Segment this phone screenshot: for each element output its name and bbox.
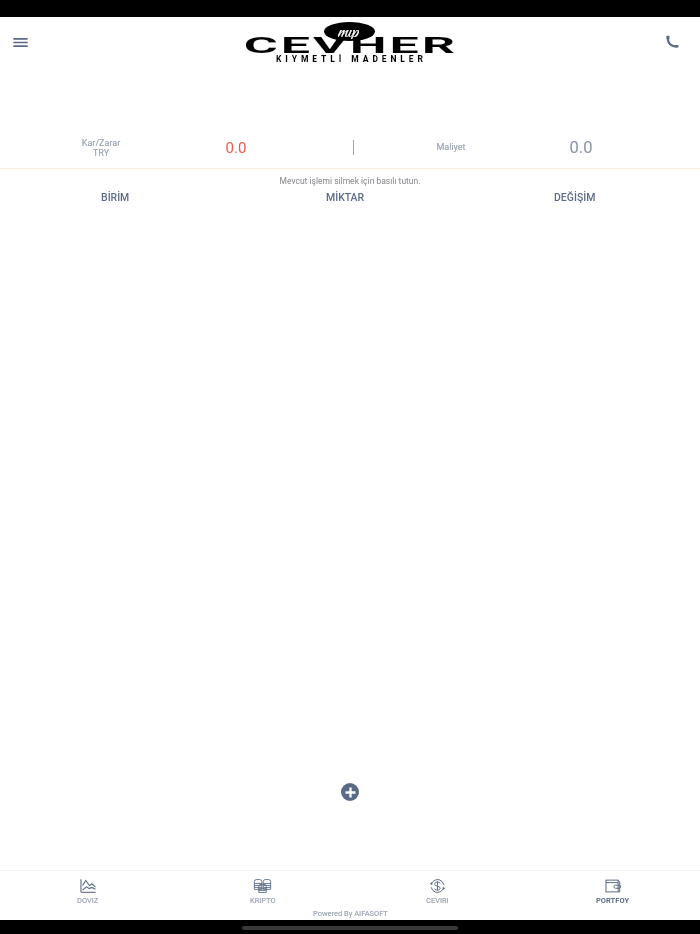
button[interactable]: MİKTAR [230,191,460,203]
staticText: KIYMETLİ MADENLER [276,54,427,64]
button[interactable]: CEVIRI [350,871,525,905]
staticText: BİRİM [101,191,130,203]
staticText: DEĞİŞİM [554,191,596,203]
button[interactable]: BİRİM [0,191,230,203]
staticText: CEVIRI [426,896,449,905]
staticText: PORTFOY [596,896,630,905]
staticText: Powered By AIFASOFT [313,909,388,918]
staticText: 0.0 [541,138,621,157]
staticText: DOVIZ [77,896,99,905]
button[interactable]: PORTFOY [525,871,700,905]
staticText: Kar/Zarar TRY [61,138,141,158]
staticText: Maliyet [411,142,491,153]
staticText: 0.0 [196,139,276,157]
button[interactable]: DEĞİŞİM [460,191,690,203]
button[interactable]: Add [341,783,359,801]
staticText: CEVHER [244,33,459,59]
button[interactable]: Call [654,23,690,59]
staticText: mıp [338,20,359,39]
button[interactable]: KRIPTO [175,871,350,905]
button[interactable]: DOVIZ [0,871,175,905]
staticText: KRIPTO [250,896,276,905]
staticText: Mevcut işlemi silmek için basılı tutun. [0,176,700,186]
staticText: MİKTAR [326,191,365,203]
button[interactable]: Menu [2,24,38,60]
